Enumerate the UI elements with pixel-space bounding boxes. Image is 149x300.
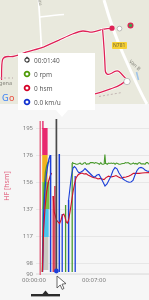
staticText: 0.0 km/u — [34, 98, 61, 107]
staticText: 00:07:00 — [82, 276, 106, 284]
staticText: 00:01:40 — [34, 56, 60, 65]
staticText: 90 — [14, 270, 33, 278]
staticText: gena — [0, 79, 12, 86]
staticText: 176 — [14, 151, 33, 159]
staticText: HF [hsm] — [2, 166, 12, 206]
staticText: 117 — [14, 232, 33, 240]
staticText: Van B — [127, 58, 143, 73]
button[interactable]: Map of route — [0, 0, 149, 104]
staticText: 0 rpm — [34, 70, 53, 79]
staticText: Bau — [36, 0, 44, 7]
staticText: N781 — [113, 42, 126, 49]
staticText: 98 — [14, 259, 33, 267]
staticText: 00:00:00 — [22, 276, 46, 284]
staticText: 0 hsm — [34, 84, 53, 93]
button[interactable]: 00:01:40 — [18, 53, 95, 110]
staticText: G — [2, 91, 9, 103]
staticText: 156 — [14, 178, 33, 186]
staticText: o — [9, 91, 15, 103]
staticText: 137 — [14, 205, 33, 213]
staticText: 195 — [14, 124, 33, 132]
